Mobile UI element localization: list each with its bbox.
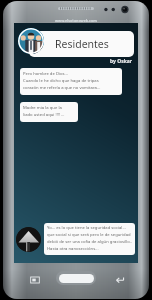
staticText: www.elsotanoweb.com (55, 18, 97, 23)
staticText: Residentes (55, 37, 109, 51)
button[interactable]: Back (113, 274, 125, 286)
button[interactable]: Residentes (29, 31, 134, 57)
staticText: corazón me refería a que no vomitara... (23, 85, 101, 91)
staticText: by Oskar (110, 58, 133, 65)
staticText: debió de ser una cofia de algún graciosi… (47, 239, 132, 245)
button[interactable]: Yo... es lo que tiene la seguridad socia… (44, 223, 135, 255)
button[interactable]: Home (56, 271, 96, 285)
staticText: Hasta otra nanoseccións... (47, 246, 99, 252)
button[interactable]: Group avatar (18, 28, 44, 54)
staticText: Madre mia la que la (23, 105, 62, 111)
button[interactable]: Menu (29, 274, 41, 286)
staticText: liado usted aqui !!!! ... (23, 112, 65, 118)
button[interactable]: Contact avatar (16, 227, 41, 252)
staticText: que social si que será pero le de seguri… (47, 232, 131, 238)
button[interactable]: Madre mia la que la (20, 102, 78, 122)
staticText: Pero hombre de Dios... (23, 71, 68, 77)
staticText: Yo... es lo que tiene la seguridad socia… (47, 225, 126, 231)
staticText: Cuando le he dicho que haga de tripas (23, 78, 99, 84)
button[interactable]: Pero hombre de Dios... (20, 68, 122, 95)
